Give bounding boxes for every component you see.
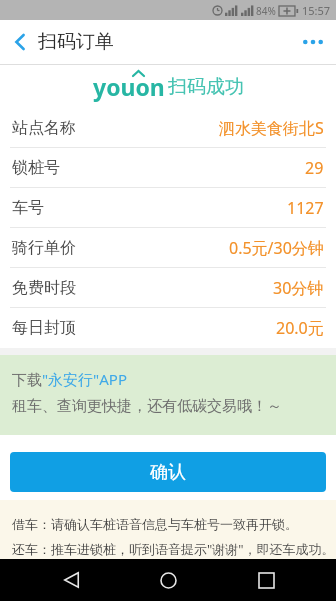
staticText: 扫码成功 [168, 75, 244, 99]
button[interactable]: More options [290, 20, 336, 64]
button[interactable]: 每日封顶 [0, 308, 336, 348]
button[interactable]: 锁桩号 [0, 148, 336, 187]
staticText: 84% [256, 4, 276, 18]
staticText: 确认 [150, 461, 186, 484]
button[interactable]: 站点名称 [0, 108, 336, 147]
button[interactable]: Back [0, 22, 40, 62]
staticText: 30分钟 [273, 277, 324, 299]
staticText: 每日封顶 [12, 318, 76, 338]
staticText: 29 [305, 157, 324, 179]
staticText: 锁桩号 [12, 158, 60, 178]
staticText: 站点名称 [12, 118, 76, 138]
button[interactable]: 骑行单价 [0, 228, 336, 267]
staticText: 20.0元 [276, 317, 324, 339]
button[interactable]: Back [44, 559, 98, 601]
button[interactable]: Recent apps [239, 559, 293, 601]
staticText: 泗水美食街北S [219, 117, 324, 139]
button[interactable]: 确认 [10, 452, 326, 492]
staticText: 免费时段 [12, 278, 76, 298]
staticText: 租车、查询更快捷，还有低碳交易哦！～ [12, 397, 282, 416]
staticText: 0.5元/30分钟 [229, 237, 324, 259]
button[interactable]: 免费时段 [0, 268, 336, 307]
staticText: 借车：请确认车桩语音信息与车桩号一致再开锁。 [12, 516, 298, 532]
staticText: 15:57 [302, 3, 331, 18]
staticText: 扫码订单 [38, 30, 114, 54]
button[interactable]: Home [141, 559, 195, 601]
staticText: 车号 [12, 198, 44, 218]
staticText: 骑行单价 [12, 238, 76, 258]
button[interactable]: 下载"永安行"APP [0, 355, 336, 435]
staticText: 1127 [287, 197, 324, 219]
staticText: youon [93, 71, 165, 102]
staticText: 还车：推车进锁桩，听到语音提示"谢谢"，即还车成功。 [12, 540, 335, 558]
staticText: 下载"永安行"APP [12, 369, 127, 389]
button[interactable]: 车号 [0, 188, 336, 227]
